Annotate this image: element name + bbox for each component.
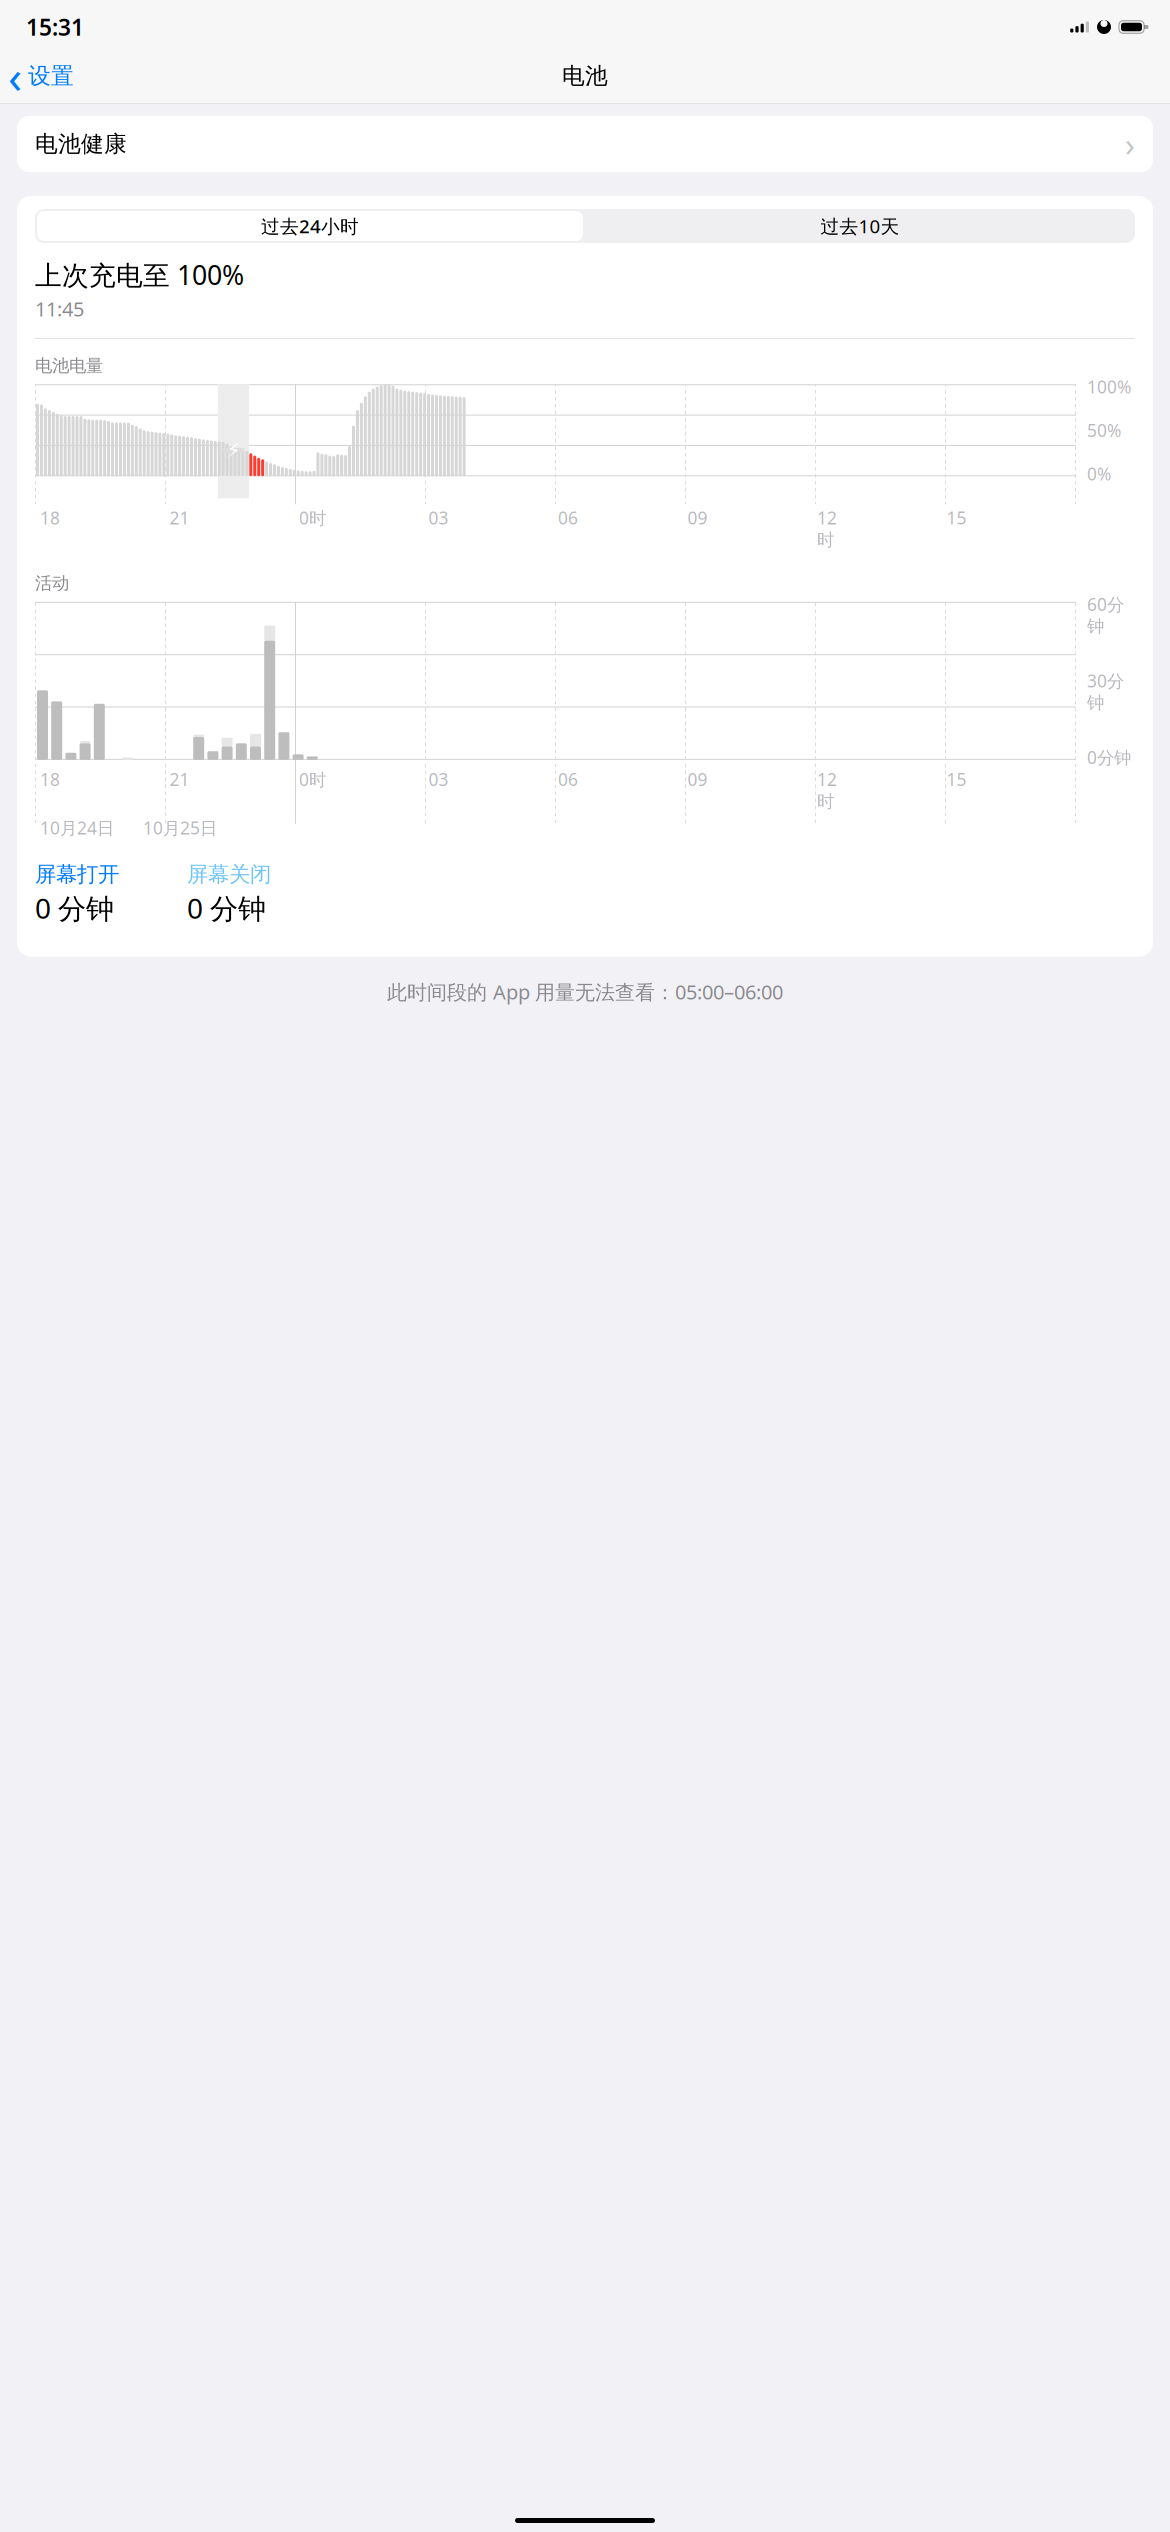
staticText: 06 [558,506,578,529]
staticText: 60分钟 [1087,593,1124,637]
staticText: 此时间段的 App 用量无法查看：05:00–06:00 [387,979,783,1005]
staticText: 15 [946,506,966,529]
staticText: 屏幕关闭 [187,861,271,887]
staticText: 10月25日 [143,816,217,839]
staticText: 0 分钟 [35,889,114,927]
staticText: 电池电量 [35,355,103,376]
button[interactable]: 电池健康 [17,116,1153,172]
staticText: 过去24小时 [261,214,359,238]
staticText: 过去10天 [820,214,899,238]
staticText: 电池 [562,62,608,90]
staticText: ⚡︎ [226,439,240,462]
staticText: 活动 [35,573,69,594]
staticText: 12时 [817,506,837,551]
staticText: 03 [428,768,448,791]
staticText: 15:31 [26,12,84,42]
staticText: 18 [40,768,60,791]
staticText: 0时 [299,506,326,529]
staticText: 0 分钟 [187,889,266,927]
staticText: 屏幕打开 [35,861,119,887]
staticText: ‹ [8,46,22,106]
staticText: 15 [946,768,966,791]
staticText: 0分钟 [1087,746,1131,769]
staticText: 06 [558,768,578,791]
staticText: 12时 [817,768,837,812]
staticText: 50% [1087,419,1121,442]
staticText: 100% [1087,375,1131,398]
staticText: 09 [687,506,707,529]
staticText: 0% [1087,462,1111,485]
button[interactable]: 过去24小时 [35,209,585,243]
staticText: 上次充电至 100% [35,257,244,292]
button[interactable]: ‹ [0,42,74,110]
staticText: 设置 [28,62,74,90]
staticText: 0时 [299,768,326,791]
button[interactable]: 过去10天 [585,209,1135,243]
staticText: 电池健康 [35,130,127,158]
staticText: 11:45 [35,295,84,322]
staticText: 09 [687,768,707,791]
staticText: 03 [428,506,448,529]
staticText: 21 [169,506,189,529]
staticText: › [1125,123,1135,165]
staticText: 30分钟 [1087,669,1124,714]
staticText: 21 [169,768,189,791]
staticText: 18 [40,506,60,529]
staticText: 10月24日 [40,816,114,839]
